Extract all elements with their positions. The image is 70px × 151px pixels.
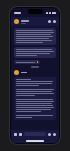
button[interactable]: Camera bbox=[19, 133, 22, 136]
button[interactable]: Profile avatar bbox=[14, 19, 19, 24]
button[interactable] bbox=[14, 47, 56, 58]
button[interactable] bbox=[14, 28, 56, 45]
button[interactable] bbox=[14, 60, 40, 64]
button[interactable] bbox=[14, 77, 56, 120]
button[interactable]: Action bbox=[48, 20, 51, 23]
button[interactable]: Send bbox=[53, 133, 56, 136]
button[interactable]: Action bbox=[53, 20, 56, 23]
button[interactable]: Emoji bbox=[48, 133, 51, 136]
button[interactable]: Attach bbox=[14, 133, 17, 136]
